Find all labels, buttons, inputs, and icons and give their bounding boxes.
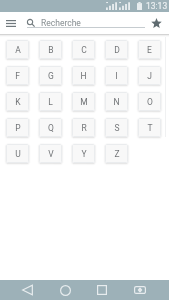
button[interactable]: R	[72, 118, 95, 137]
staticText: M	[80, 97, 88, 107]
button[interactable]: Menu	[2, 15, 19, 32]
button[interactable]: Recents	[92, 280, 112, 300]
button[interactable]: E	[138, 40, 161, 59]
button[interactable]: Q	[39, 118, 62, 137]
button[interactable]: S	[105, 118, 128, 137]
button[interactable]: F	[6, 66, 29, 85]
button[interactable]: M	[72, 92, 95, 111]
button[interactable]: T	[138, 118, 161, 137]
staticText: Z	[114, 149, 120, 159]
staticText: S	[114, 123, 120, 133]
staticText: J	[147, 71, 152, 81]
button[interactable]: J	[138, 66, 161, 85]
button[interactable]: I	[105, 66, 128, 85]
button[interactable]: G	[39, 66, 62, 85]
button[interactable]: O	[138, 92, 161, 111]
staticText: R	[81, 123, 87, 133]
button[interactable]: A	[6, 40, 29, 59]
staticText: T	[147, 123, 153, 133]
button[interactable]: Back	[17, 280, 37, 300]
button[interactable]: V	[39, 144, 62, 163]
staticText: F	[15, 71, 20, 81]
staticText: N	[113, 97, 120, 107]
button[interactable]: D	[105, 40, 128, 59]
button[interactable]: B	[39, 40, 62, 59]
staticText: A	[15, 45, 21, 55]
staticText: P	[15, 123, 21, 133]
button[interactable]: C	[72, 40, 95, 59]
staticText: Q	[48, 123, 54, 133]
staticText: V	[48, 149, 54, 159]
staticText: O	[147, 97, 153, 107]
button[interactable]: L	[39, 92, 62, 111]
staticText: Y	[81, 149, 87, 159]
staticText: K	[15, 97, 21, 107]
staticText: C	[81, 45, 87, 55]
button[interactable]: U	[6, 144, 29, 163]
staticText: B	[48, 45, 54, 55]
staticText: Recherche	[41, 18, 81, 28]
button[interactable]: Screenshot	[130, 280, 150, 300]
staticText: U	[15, 149, 21, 159]
button[interactable]: Home	[55, 280, 75, 300]
button[interactable]: Y	[72, 144, 95, 163]
staticText: H	[80, 71, 87, 81]
button[interactable]: H	[72, 66, 95, 85]
button[interactable]: N	[105, 92, 128, 111]
staticText: 13:13	[146, 1, 168, 11]
staticText: I	[115, 71, 118, 81]
staticText: G	[48, 71, 54, 81]
staticText: E	[147, 45, 152, 55]
button[interactable]: Favorites	[147, 14, 165, 32]
staticText: D	[114, 45, 120, 55]
button[interactable]: K	[6, 92, 29, 111]
button[interactable]: Z	[105, 144, 128, 163]
button[interactable]: P	[6, 118, 29, 137]
staticText: L	[48, 97, 53, 107]
